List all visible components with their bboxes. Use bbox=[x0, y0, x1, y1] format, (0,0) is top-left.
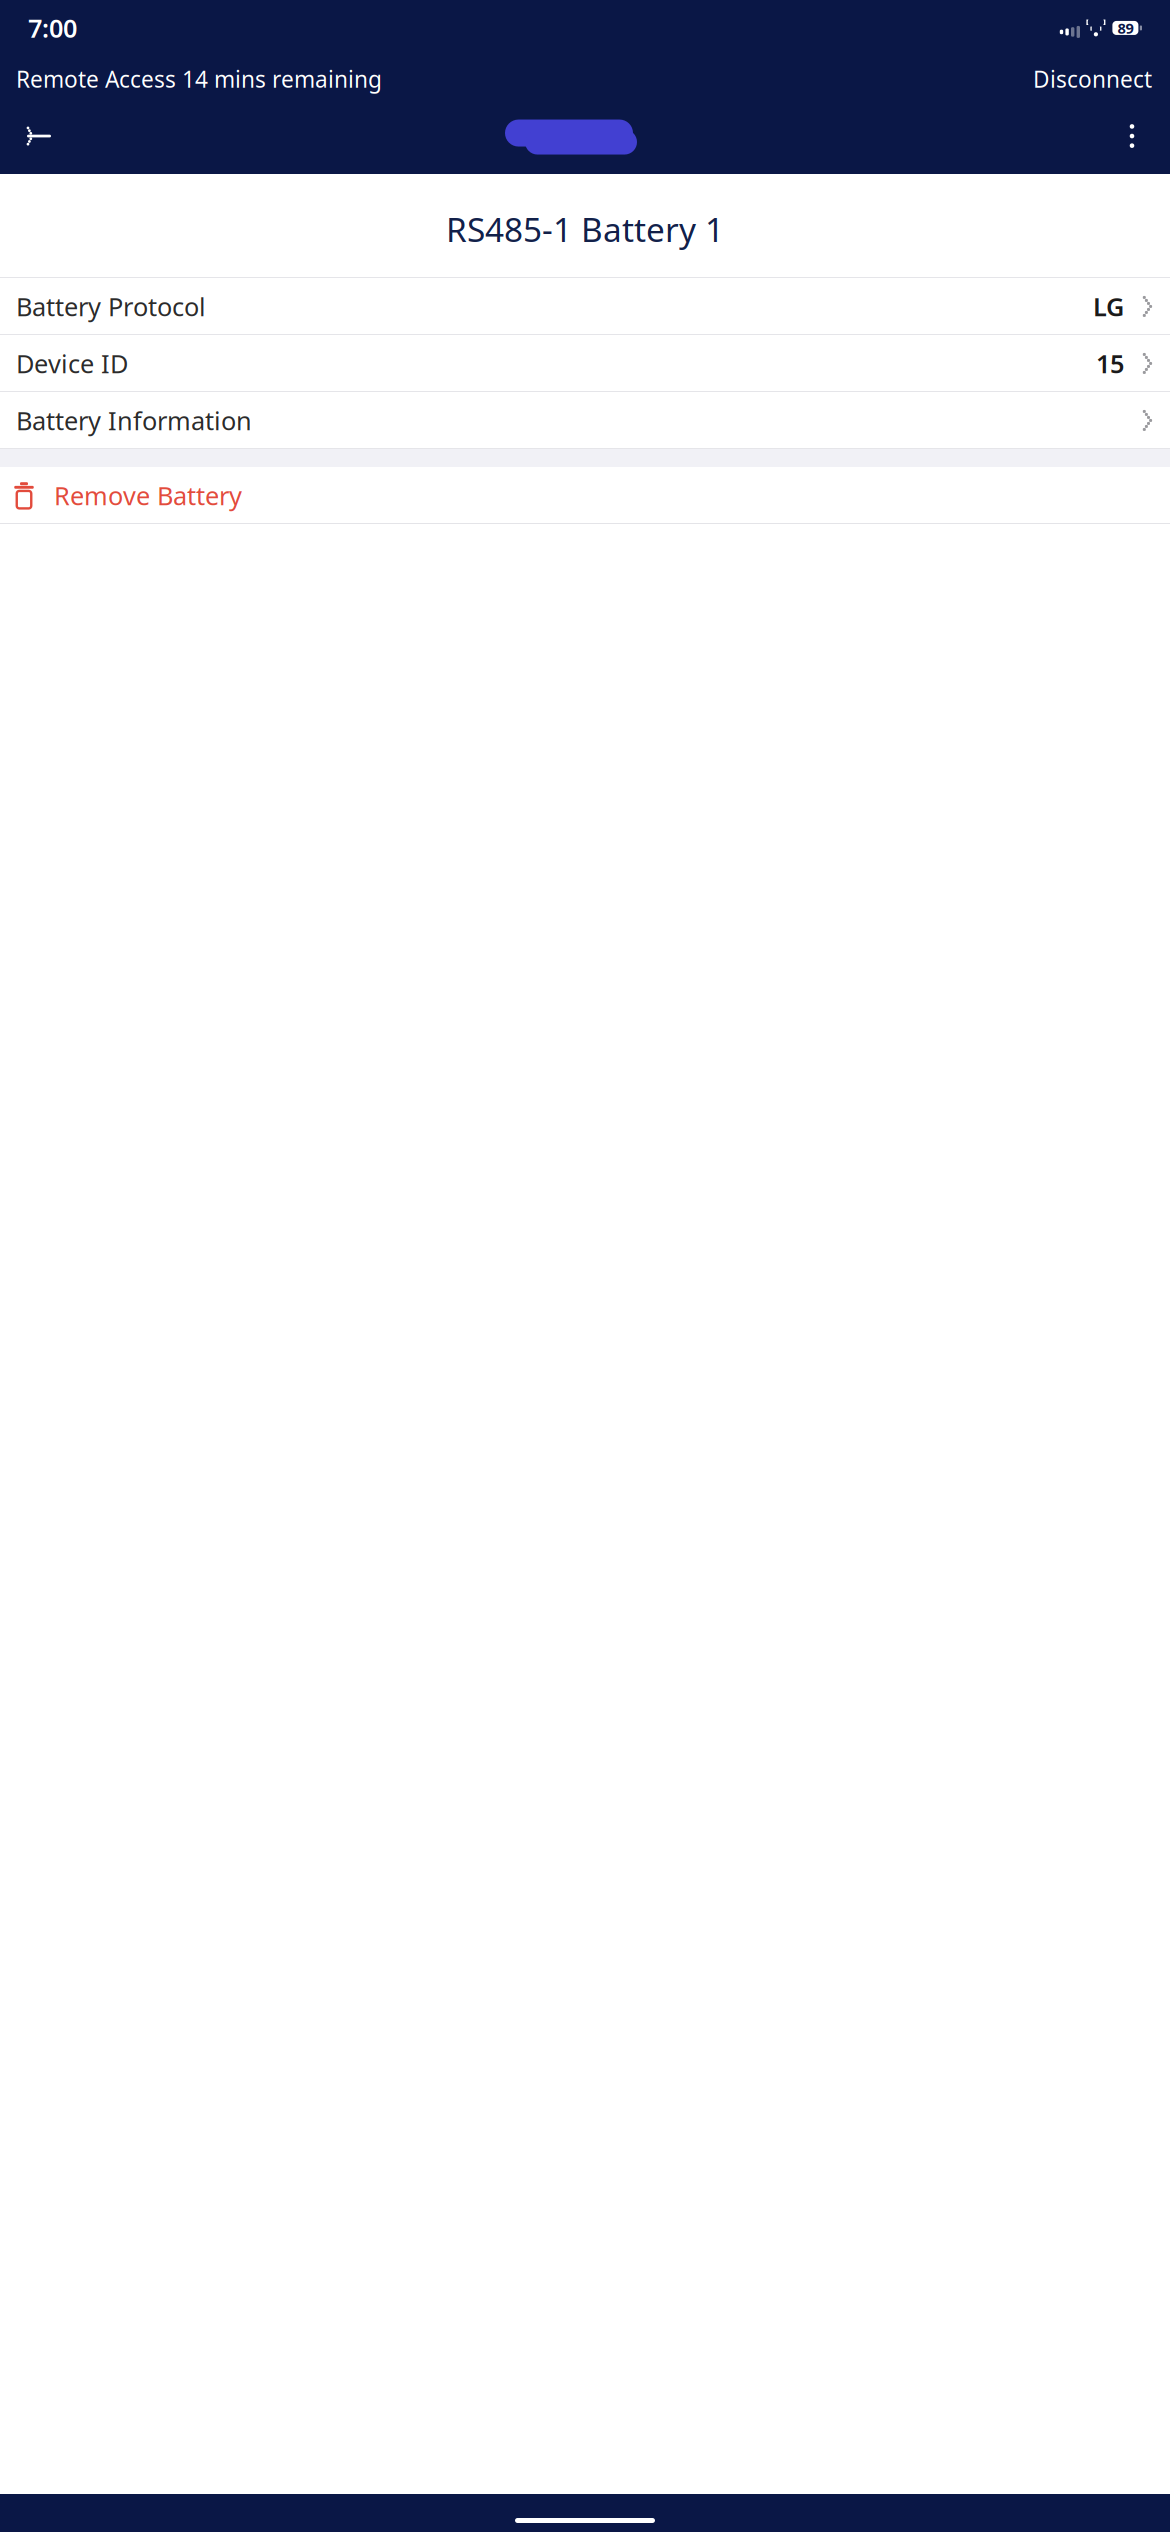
staticText: 89 bbox=[1117, 18, 1133, 38]
button[interactable]: Battery Information bbox=[0, 392, 1170, 449]
staticText: Remote Access 14 mins remaining bbox=[16, 64, 382, 94]
staticText: Device ID bbox=[16, 347, 128, 380]
staticText: Remove Battery bbox=[54, 479, 242, 512]
staticText: Battery Protocol bbox=[16, 290, 206, 323]
staticText: Disconnect bbox=[1033, 64, 1152, 94]
button[interactable]: Device ID bbox=[0, 335, 1170, 392]
button[interactable]: Remove Battery bbox=[0, 467, 1170, 524]
button[interactable]: More options bbox=[1108, 112, 1156, 160]
staticText: LG bbox=[1093, 290, 1124, 323]
button[interactable]: Battery Protocol bbox=[0, 278, 1170, 335]
staticText: Battery Information bbox=[16, 404, 252, 437]
staticText: 15 bbox=[1096, 347, 1124, 380]
button[interactable]: Back bbox=[14, 112, 62, 160]
staticText: RS485-1 Battery 1 bbox=[446, 207, 724, 251]
staticText: 7:00 bbox=[28, 11, 77, 45]
button[interactable]: Disconnect bbox=[1031, 59, 1154, 99]
